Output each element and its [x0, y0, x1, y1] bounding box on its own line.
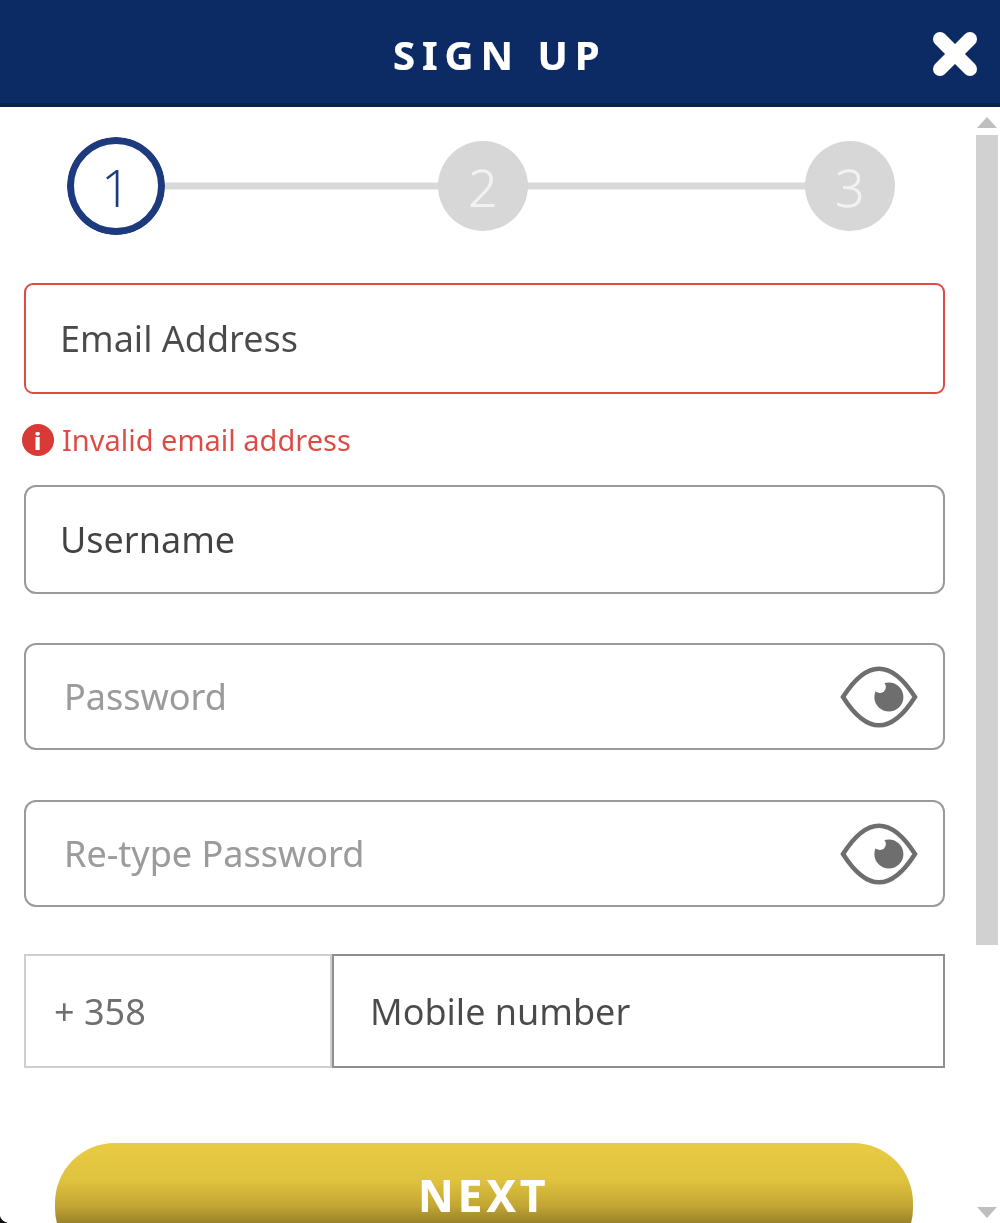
- staticText: Username: [60, 515, 236, 564]
- staticText: NEXT: [418, 1165, 550, 1223]
- staticText: 2: [468, 151, 498, 222]
- button[interactable]: 3: [805, 141, 895, 231]
- button[interactable]: 2: [438, 141, 528, 231]
- button[interactable]: [927, 26, 983, 82]
- staticText: + 358: [54, 987, 146, 1036]
- staticText: SIGN UP: [393, 27, 607, 81]
- staticText: Mobile number: [370, 987, 631, 1036]
- button[interactable]: 1: [67, 137, 165, 235]
- staticText: Invalid email address: [62, 420, 351, 459]
- staticText: 3: [835, 151, 865, 222]
- staticText: 1: [101, 151, 131, 222]
- staticText: Email Address: [60, 314, 299, 363]
- staticText: Password: [64, 672, 227, 721]
- staticText: Re-type Password: [64, 829, 365, 878]
- button[interactable]: Password: [24, 643, 945, 750]
- button[interactable]: + 358: [24, 954, 332, 1068]
- button[interactable]: Re-type Password: [24, 800, 945, 907]
- button[interactable]: Email Address: [24, 283, 945, 394]
- button[interactable]: NEXT: [55, 1143, 913, 1223]
- button[interactable]: Mobile number: [332, 954, 945, 1068]
- staticText: i: [34, 424, 42, 456]
- button[interactable]: Username: [24, 485, 945, 594]
